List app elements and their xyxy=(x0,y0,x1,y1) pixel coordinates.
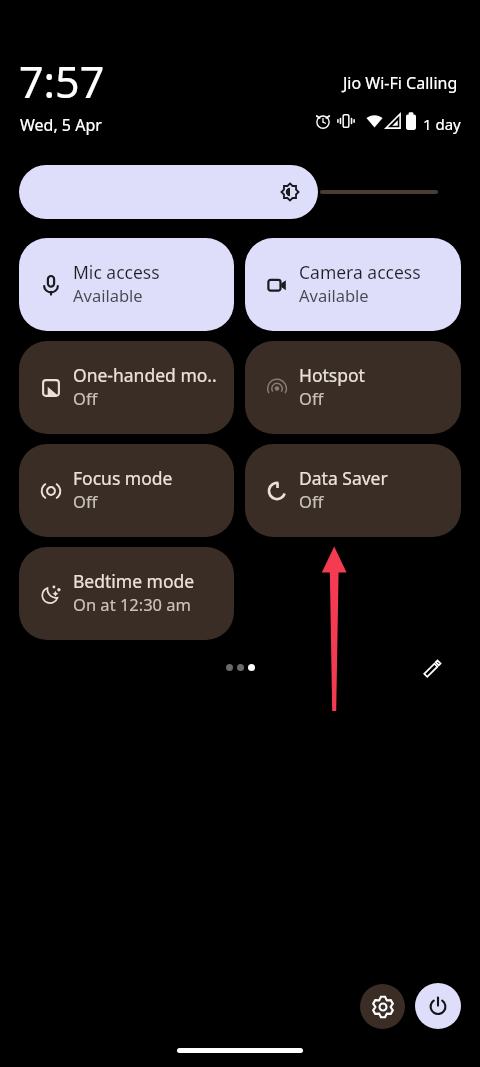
staticText: Off xyxy=(73,490,98,512)
staticText: Hotspot xyxy=(299,363,365,387)
staticText: 1 day xyxy=(423,114,461,134)
button[interactable]: Edit tiles xyxy=(415,651,447,683)
staticText: Off xyxy=(73,387,98,409)
button[interactable]: Hotspot xyxy=(245,341,461,434)
button[interactable]: Power xyxy=(415,983,461,1029)
staticText: Available xyxy=(299,284,369,306)
staticText: Bedtime mode xyxy=(73,569,195,593)
staticText: Off xyxy=(299,387,324,409)
staticText: On at 12:30 am xyxy=(73,593,192,615)
staticText: 7:57 xyxy=(19,52,105,111)
staticText: One-handed mo.. xyxy=(73,363,217,387)
staticText: Available xyxy=(73,284,143,306)
staticText: Jio Wi-Fi Calling xyxy=(343,72,458,94)
staticText: Camera access xyxy=(299,260,421,284)
staticText: Wed, 5 Apr xyxy=(20,114,102,136)
staticText: Data Saver xyxy=(299,466,388,490)
button[interactable]: One-handed mo.. xyxy=(19,341,234,434)
staticText: Mic access xyxy=(73,260,160,284)
button[interactable]: Mic access xyxy=(19,238,234,331)
button[interactable]: Settings xyxy=(360,984,405,1029)
staticText: Focus mode xyxy=(73,466,173,490)
button[interactable]: Data Saver xyxy=(245,444,461,537)
button[interactable]: Camera access xyxy=(245,238,461,331)
staticText: Off xyxy=(299,490,324,512)
button[interactable]: Focus mode xyxy=(19,444,234,537)
button[interactable]: Brightness xyxy=(19,165,318,219)
button[interactable]: Bedtime mode xyxy=(19,547,234,640)
